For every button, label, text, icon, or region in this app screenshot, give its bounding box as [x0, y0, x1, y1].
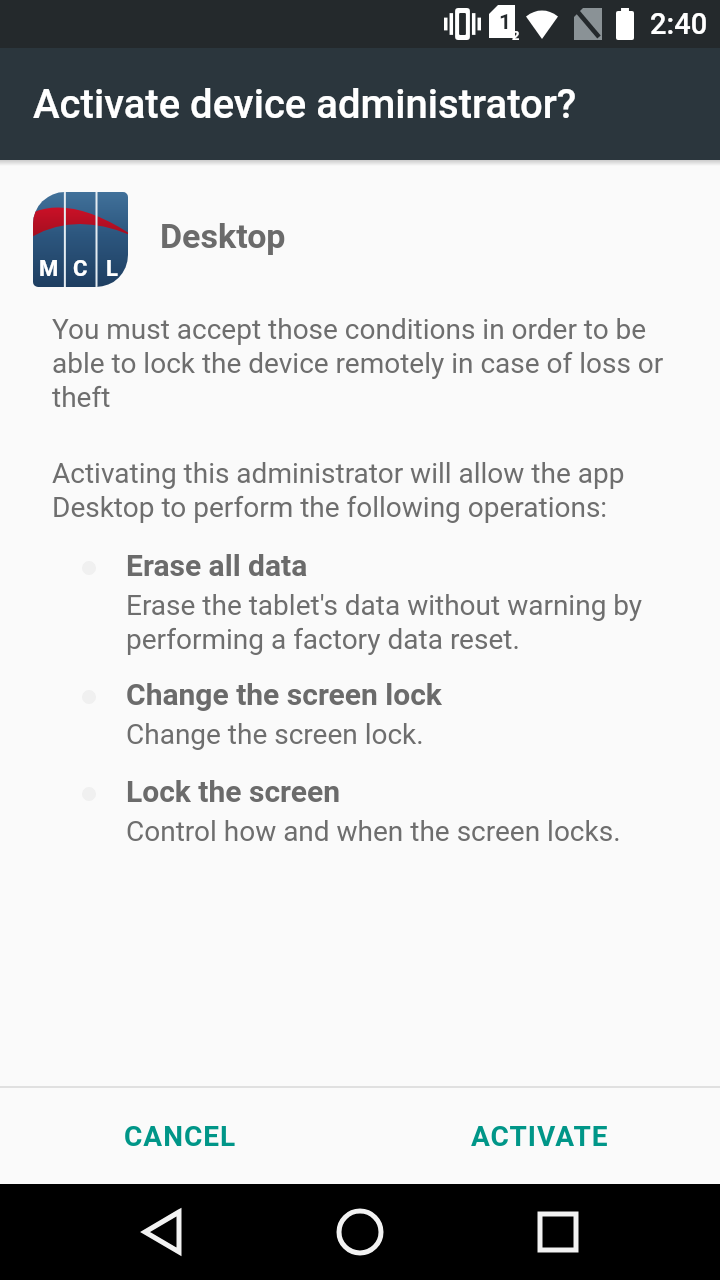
- staticText: Control how and when the screen locks.: [126, 815, 621, 848]
- button[interactable]: CANCEL: [0, 1088, 360, 1184]
- staticText: Erase the tablet's data without warning …: [126, 589, 643, 656]
- staticText: Desktop: [160, 216, 286, 256]
- staticText: M: [39, 256, 59, 282]
- staticText: ACTIVATE: [471, 1120, 609, 1153]
- button[interactable]: [459, 1184, 657, 1280]
- staticText: 2: [512, 28, 520, 43]
- staticText: Activate device administrator?: [33, 81, 577, 128]
- staticText: C: [73, 256, 88, 282]
- staticText: 1: [499, 10, 512, 35]
- staticText: L: [106, 256, 118, 282]
- staticText: Change the screen lock: [126, 677, 442, 712]
- staticText: Activating this administrator will allow…: [52, 457, 625, 524]
- staticText: Lock the screen: [126, 774, 340, 809]
- staticText: CANCEL: [124, 1120, 237, 1153]
- button[interactable]: [261, 1184, 459, 1280]
- staticText: You must accept those conditions in orde…: [52, 313, 664, 414]
- staticText: Change the screen lock.: [126, 718, 424, 751]
- staticText: Erase all data: [126, 548, 308, 583]
- button[interactable]: [63, 1184, 261, 1280]
- staticText: 2:40: [650, 7, 708, 41]
- button[interactable]: ACTIVATE: [360, 1088, 720, 1184]
